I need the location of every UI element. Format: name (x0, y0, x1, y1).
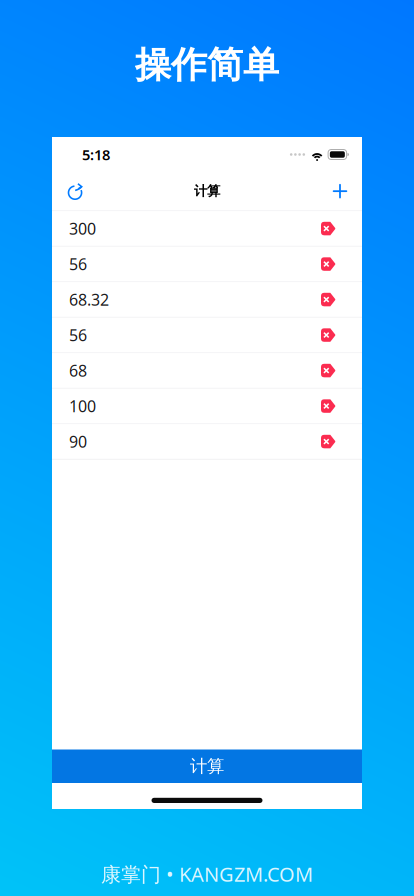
button[interactable]: 90 (52, 424, 362, 460)
staticText: 康掌门 • KANGZM.COM (101, 861, 313, 887)
staticText: 300 (69, 218, 96, 239)
button[interactable]: 计算 (52, 749, 362, 783)
staticText: 56 (69, 324, 87, 346)
button[interactable]: 68.32 (52, 282, 362, 318)
button[interactable]: 添加 (320, 173, 360, 210)
staticText: 68.32 (69, 289, 109, 310)
staticText: 68 (69, 360, 87, 381)
staticText: 100 (69, 395, 96, 417)
staticText: 5:18 (82, 145, 110, 164)
staticText: 56 (69, 253, 87, 275)
button[interactable]: 100 (52, 389, 362, 424)
button[interactable]: 300 (52, 211, 362, 247)
staticText: 90 (69, 431, 87, 452)
button[interactable]: 刷新 (56, 173, 96, 210)
staticText: 计算 (190, 756, 224, 777)
staticText: 计算 (194, 183, 220, 199)
button[interactable]: 68 (52, 353, 362, 389)
button[interactable]: 56 (52, 247, 362, 282)
button[interactable]: 56 (52, 318, 362, 353)
staticText: 操作简单 (135, 43, 279, 87)
